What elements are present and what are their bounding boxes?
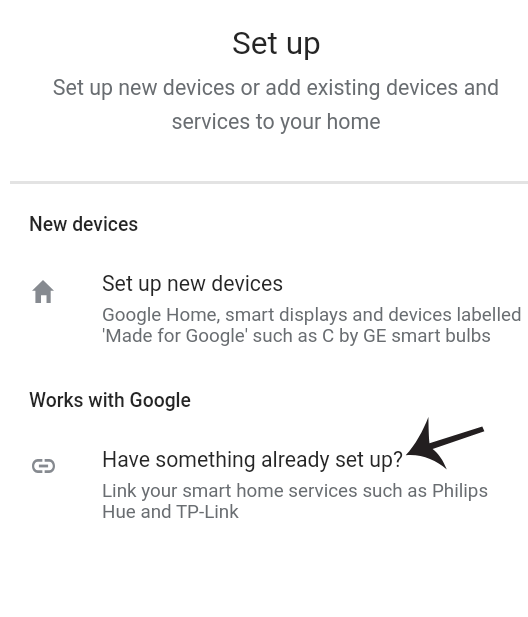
button[interactable]: Link [0, 433, 528, 528]
staticText: New devices [29, 213, 139, 236]
staticText: Set up new devices or add existing devic… [46, 68, 506, 136]
staticText: Have something already set up? [102, 447, 404, 472]
staticText: Set up new devices [102, 271, 284, 296]
staticText: Set up [232, 25, 321, 62]
button[interactable]: Home [0, 257, 528, 352]
other: Home [32, 280, 54, 303]
staticText: Works with Google [29, 389, 191, 412]
other: Link [32, 459, 55, 473]
staticText: Google Home, smart displays and devices … [102, 305, 522, 347]
staticText: Link your smart home services such as Ph… [102, 481, 522, 523]
